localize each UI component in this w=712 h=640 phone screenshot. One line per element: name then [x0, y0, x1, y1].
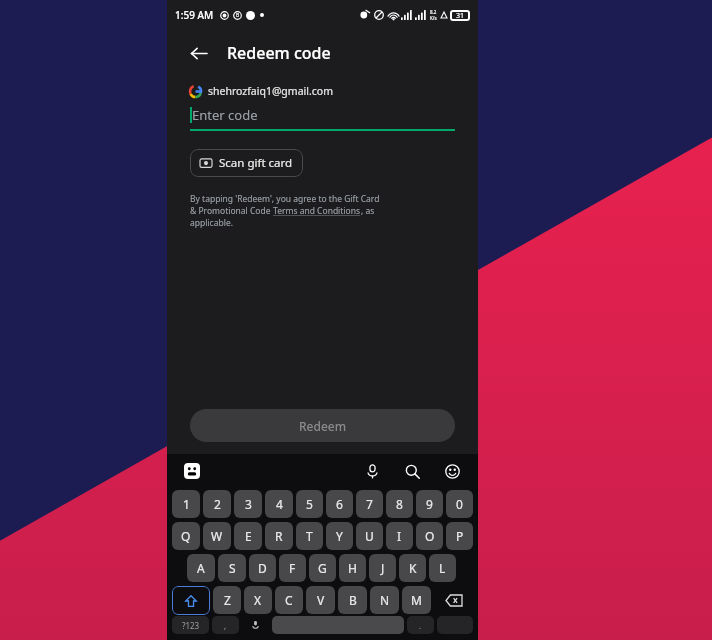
button[interactable]: L: [429, 554, 456, 582]
staticText: 1:59 AM: [175, 8, 214, 22]
staticText: 7: [366, 496, 373, 512]
button[interactable]: F: [279, 554, 306, 582]
staticText: 8.2: [430, 9, 437, 15]
button[interactable]: 0: [446, 490, 473, 518]
button[interactable]: W: [203, 522, 231, 550]
button[interactable]: Stickers: [181, 460, 203, 482]
staticText: Y: [336, 528, 343, 544]
button[interactable]: 6: [326, 490, 353, 518]
button[interactable]: K: [399, 554, 426, 582]
staticText: .: [419, 620, 422, 631]
staticText: applicable.: [190, 217, 233, 229]
staticText: Redeem: [299, 418, 347, 434]
button[interactable]: J: [369, 554, 396, 582]
staticText: 4: [276, 496, 283, 512]
button[interactable]: D: [249, 554, 276, 582]
staticText: P: [456, 528, 464, 544]
button[interactable]: .: [407, 616, 434, 634]
button[interactable]: 7: [356, 490, 383, 518]
button[interactable]: C: [275, 586, 303, 614]
button[interactable]: ,: [212, 616, 239, 634]
staticText: Q: [181, 528, 191, 544]
button[interactable]: 4: [265, 490, 293, 518]
staticText: B: [349, 592, 357, 608]
staticText: 5: [306, 496, 313, 512]
button[interactable]: R: [265, 522, 293, 550]
staticText: N: [380, 592, 390, 608]
button[interactable]: A: [187, 554, 215, 582]
staticText: 31: [456, 11, 465, 21]
staticText: shehrozfaiq1@gmail.com: [208, 84, 333, 98]
button[interactable]: 3: [234, 490, 262, 518]
button[interactable]: S: [218, 554, 246, 582]
button[interactable]: H: [339, 554, 366, 582]
button[interactable]: N: [370, 586, 399, 614]
staticText: K/s: [430, 15, 437, 21]
button[interactable]: T: [296, 522, 323, 550]
button[interactable]: Shift: [172, 586, 210, 615]
staticText: A: [197, 560, 205, 576]
staticText: 8: [396, 496, 403, 512]
staticText: U: [365, 528, 374, 544]
button[interactable]: Redeem: [190, 409, 455, 442]
staticText: G: [318, 560, 327, 576]
button[interactable]: Enter: [437, 616, 473, 634]
button[interactable]: 5: [296, 490, 323, 518]
staticText: By tapping 'Redeem', you agree to the Gi…: [190, 193, 380, 205]
button[interactable]: Backspace: [434, 586, 473, 615]
button[interactable]: Y: [326, 522, 353, 550]
staticText: I: [397, 528, 402, 544]
staticText: O: [425, 528, 435, 544]
staticText: Scan gift card: [219, 155, 293, 171]
button[interactable]: 9: [416, 490, 443, 518]
button[interactable]: 8: [386, 490, 413, 518]
staticText: M: [411, 592, 422, 608]
staticText: F: [289, 560, 296, 576]
button[interactable]: Space: [272, 616, 404, 634]
staticText: B: [236, 12, 240, 19]
button[interactable]: Z: [213, 586, 241, 614]
button[interactable]: E: [234, 522, 262, 550]
staticText: S: [229, 560, 236, 576]
button[interactable]: [242, 616, 269, 634]
staticText: V: [317, 592, 325, 608]
staticText: ,: [224, 620, 227, 631]
button[interactable]: Terms and Conditions: [273, 205, 361, 217]
button[interactable]: 2: [203, 490, 231, 518]
button[interactable]: I: [386, 522, 413, 550]
button[interactable]: Scan gift card: [190, 149, 303, 177]
staticText: 2: [214, 496, 221, 512]
staticText: 6: [336, 496, 343, 512]
staticText: , as: [361, 205, 375, 217]
button[interactable]: ?123: [172, 616, 209, 634]
button[interactable]: Back: [181, 36, 215, 70]
button[interactable]: U: [356, 522, 383, 550]
staticText: D: [258, 560, 267, 576]
staticText: C: [285, 592, 293, 608]
button[interactable]: O: [416, 522, 443, 550]
staticText: & Promotional Code: [190, 205, 273, 217]
button[interactable]: P: [446, 522, 473, 550]
staticText: K: [409, 560, 417, 576]
staticText: 9: [426, 496, 433, 512]
button[interactable]: Emoji: [440, 459, 464, 483]
staticText: ?123: [182, 620, 200, 631]
staticText: J: [381, 560, 385, 576]
button[interactable]: G: [309, 554, 336, 582]
button[interactable]: Q: [172, 522, 200, 550]
staticText: 3: [245, 496, 252, 512]
staticText: Enter code: [192, 106, 258, 124]
button[interactable]: M: [402, 586, 431, 614]
button[interactable]: V: [306, 586, 335, 614]
staticText: 1: [183, 496, 190, 512]
button[interactable]: X: [244, 586, 272, 614]
staticText: W: [211, 528, 223, 544]
button[interactable]: Voice input: [360, 459, 384, 483]
button[interactable]: B: [338, 586, 367, 614]
staticText: L: [439, 560, 446, 576]
staticText: H: [348, 560, 357, 576]
staticText: R: [275, 528, 283, 544]
button[interactable]: 1: [172, 490, 200, 518]
button[interactable]: Search: [400, 459, 424, 483]
staticText: X: [254, 592, 262, 608]
